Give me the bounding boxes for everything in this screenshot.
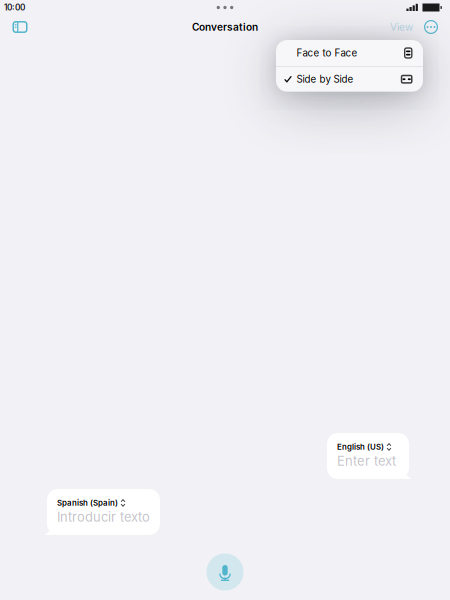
staticText: View <box>390 21 413 33</box>
staticText: 10:00 <box>4 2 25 12</box>
button[interactable]: Side by Side <box>276 67 423 92</box>
staticText: Spanish (Spain) <box>57 498 118 508</box>
button[interactable]: View <box>387 16 416 38</box>
button[interactable]: More Options <box>421 16 441 38</box>
staticText: Side by Side <box>296 73 353 85</box>
staticText: Introducir texto <box>57 509 150 525</box>
staticText: Enter text <box>337 453 396 469</box>
staticText: Conversation <box>192 21 258 33</box>
button[interactable]: Start Recording <box>203 550 247 594</box>
staticText: English (US) <box>337 442 384 452</box>
staticText: Face to Face <box>296 47 357 59</box>
button[interactable]: Face to Face <box>276 40 423 66</box>
button[interactable]: Show Sidebar <box>6 15 34 39</box>
